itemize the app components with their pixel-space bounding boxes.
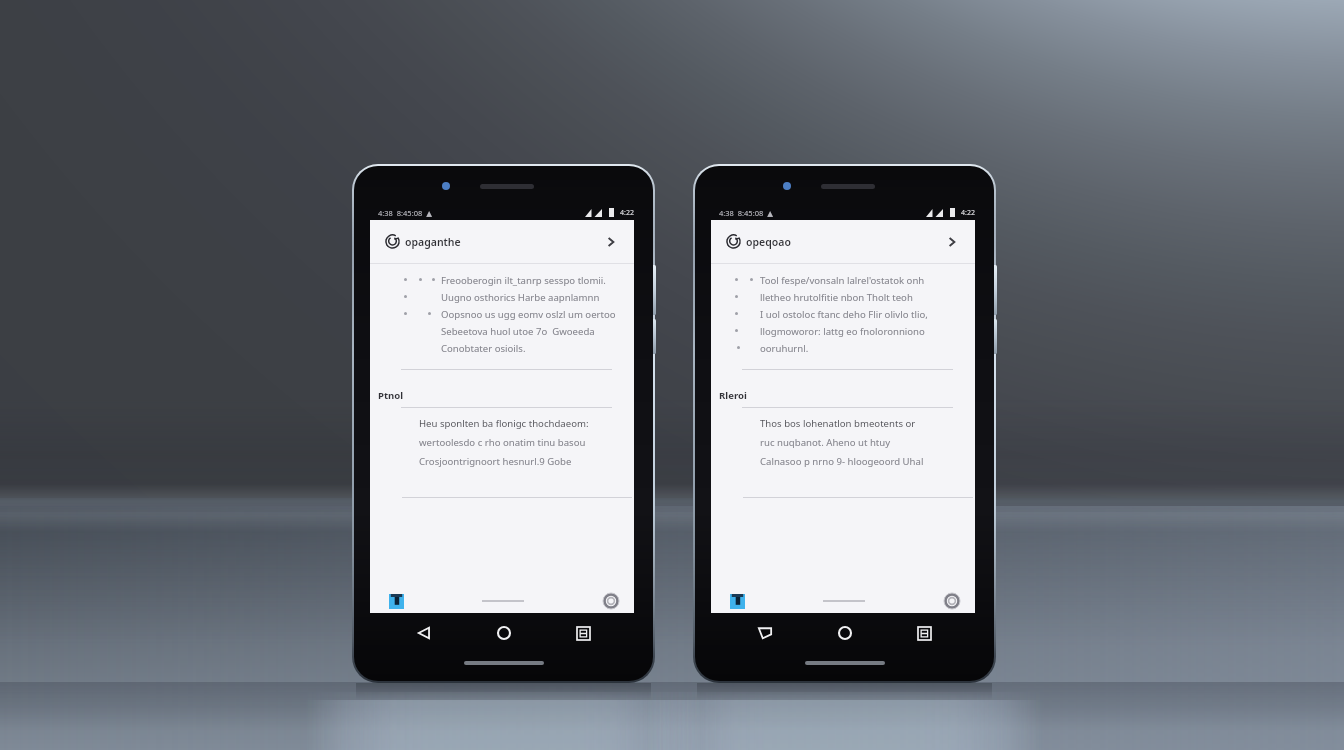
button[interactable]: App [388,593,404,609]
staticText: 4:22 [620,208,634,218]
button[interactable]: opeqoao [711,220,975,263]
staticText: 4:38 8:45:08 ▲ [719,208,773,218]
staticText: I uol ostoloc ftanc deho Flir olivlo tli… [760,308,928,321]
staticText: Uugno osthorics Harbe aapnlamnn [441,291,600,304]
button[interactable]: Settings [943,592,961,610]
staticText: Rleroi [719,389,747,402]
button[interactable]: opaganthe [370,220,634,263]
staticText: wertoolesdo c rho onatim tinu basou [419,436,586,449]
staticText: opaganthe [405,235,461,249]
staticText: llogmoworor: lattg eo fnoloronniono [760,325,925,338]
staticText: lletheo hrutolfitie nbon Tholt teoh [760,291,913,304]
staticText: Freooberogin ilt_tanrp sesspo tlomii. [441,274,606,287]
button[interactable]: Home [489,618,519,648]
button[interactable]: Recents [568,618,598,648]
staticText: Oopsnoo us ugg eomv oslzl um oertoo [441,308,616,321]
other: Open [946,236,958,248]
staticText: 4:22 [961,208,975,218]
staticText: Crosjoontrignoort hesnurl.9 Gobe [419,455,572,468]
staticText: ruc nuqbanot. Aheno ut htuy [760,436,891,449]
staticText: Ptnol [378,389,404,402]
button[interactable]: Settings [602,592,620,610]
staticText: Heu sponlten ba flonigc thochdaeom: [419,417,589,430]
staticText: Tool fespe/vonsaln lalrel'ostatok onh [760,274,925,287]
staticText: opeqoao [746,235,791,249]
staticText: 4:38 8:45:08 ▲ [378,208,432,218]
staticText: ooruhurnl. [760,342,809,355]
button[interactable]: Recents [909,618,939,648]
staticText: Sebeetova huol utoe 7o Gwoeeda [441,325,595,338]
button[interactable]: Home [830,618,860,648]
button[interactable]: App [729,593,745,609]
staticText: Thos bos lohenatlon bmeotents or [760,417,916,430]
staticText: Calnasoo p nrno 9- hloogeoord Uhal [760,455,924,468]
staticText: Conobtater osioils. [441,342,526,355]
button[interactable]: Back [409,618,439,648]
other: Open [605,236,617,248]
button[interactable]: Back [750,618,780,648]
